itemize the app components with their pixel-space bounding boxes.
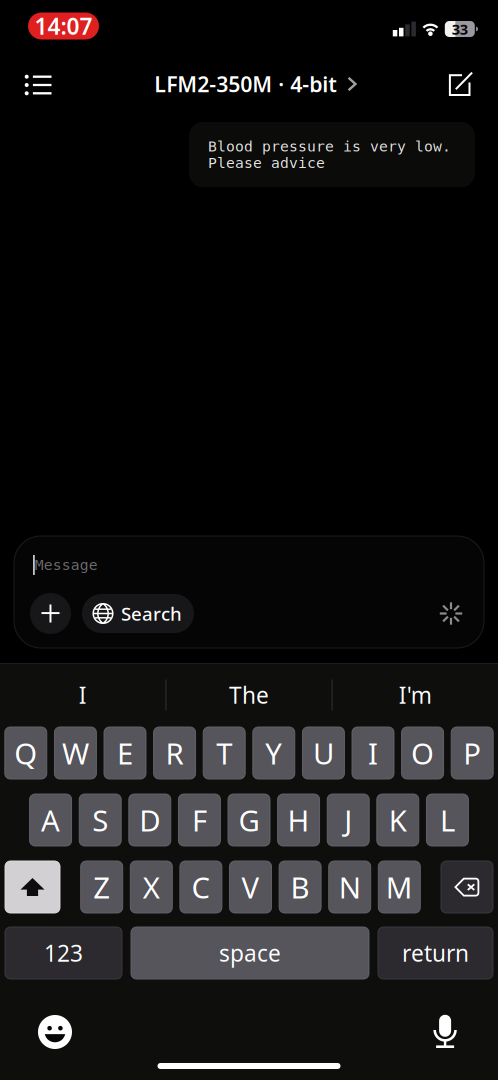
button[interactable]: A bbox=[30, 794, 72, 846]
button[interactable]: E bbox=[104, 727, 146, 779]
button[interactable]: H bbox=[278, 794, 320, 846]
staticText: I'm bbox=[399, 680, 432, 710]
button[interactable]: New chat bbox=[437, 60, 485, 108]
button[interactable]: Z bbox=[81, 861, 123, 913]
button[interactable]: K bbox=[377, 794, 419, 846]
button[interactable]: Y bbox=[253, 727, 295, 779]
staticText: F bbox=[192, 800, 207, 839]
button[interactable]: X bbox=[130, 861, 172, 913]
staticText: S bbox=[92, 800, 108, 839]
staticText: Z bbox=[93, 867, 110, 906]
staticText: H bbox=[288, 800, 310, 839]
staticText: P bbox=[463, 733, 481, 772]
button[interactable]: W bbox=[54, 727, 96, 779]
staticText: I bbox=[79, 680, 87, 710]
staticText: E bbox=[117, 733, 133, 772]
staticText: V bbox=[241, 867, 259, 906]
button[interactable]: S bbox=[79, 794, 121, 846]
button[interactable]: Emoji bbox=[31, 1010, 79, 1054]
staticText: L bbox=[440, 800, 455, 839]
button[interactable]: L bbox=[426, 794, 468, 846]
button[interactable]: V bbox=[229, 861, 271, 913]
button[interactable]: 123 bbox=[5, 927, 122, 979]
staticText: Blood pressure is very low. Please advic… bbox=[208, 138, 451, 171]
staticText: R bbox=[166, 733, 184, 772]
staticText: D bbox=[139, 800, 160, 839]
button[interactable]: N bbox=[329, 861, 371, 913]
staticText: X bbox=[143, 867, 160, 906]
staticText: Y bbox=[265, 733, 282, 772]
button[interactable]: return bbox=[378, 927, 493, 979]
staticText: G bbox=[238, 800, 259, 839]
staticText: N bbox=[339, 867, 361, 906]
button[interactable]: Shift bbox=[5, 861, 60, 913]
button[interactable]: space bbox=[131, 927, 369, 979]
staticText: A bbox=[41, 800, 60, 839]
button[interactable]: LFM2-350M · 4-bit bbox=[142, 60, 357, 108]
button[interactable]: P bbox=[451, 727, 493, 779]
button[interactable]: O bbox=[402, 727, 444, 779]
staticText: Q bbox=[14, 733, 37, 772]
staticText: Message bbox=[35, 557, 98, 573]
button[interactable]: I bbox=[352, 727, 394, 779]
button[interactable]: J bbox=[327, 794, 369, 846]
staticText: T bbox=[216, 733, 232, 772]
button[interactable]: G bbox=[228, 794, 270, 846]
staticText: Search bbox=[121, 601, 182, 626]
button[interactable]: Conversations bbox=[14, 60, 62, 108]
staticText: U bbox=[313, 733, 334, 772]
button[interactable]: The bbox=[166, 669, 331, 721]
button[interactable]: Q bbox=[5, 727, 47, 779]
button[interactable]: M bbox=[378, 861, 420, 913]
staticText: I bbox=[368, 733, 378, 772]
button[interactable]: I bbox=[0, 669, 165, 721]
staticText: B bbox=[291, 867, 310, 906]
staticText: O bbox=[411, 733, 434, 772]
staticText: return bbox=[402, 938, 469, 968]
staticText: J bbox=[344, 800, 352, 839]
staticText: LFM2-350M · 4-bit bbox=[154, 70, 337, 98]
staticText: The bbox=[229, 680, 269, 710]
button[interactable]: I'm bbox=[333, 669, 498, 721]
staticText: W bbox=[62, 733, 89, 772]
staticText: 33 bbox=[452, 19, 468, 39]
staticText: C bbox=[191, 867, 210, 906]
staticText: K bbox=[389, 800, 407, 839]
button[interactable]: Search bbox=[82, 594, 194, 633]
button[interactable]: F bbox=[178, 794, 220, 846]
button[interactable]: R bbox=[154, 727, 196, 779]
button[interactable]: D bbox=[129, 794, 171, 846]
button[interactable]: B bbox=[279, 861, 321, 913]
button[interactable]: U bbox=[302, 727, 344, 779]
button[interactable]: Delete bbox=[441, 861, 493, 913]
staticText: 14:07 bbox=[34, 11, 92, 41]
staticText: 123 bbox=[44, 938, 83, 968]
button[interactable]: Dictation bbox=[421, 1010, 469, 1054]
staticText: space bbox=[219, 938, 281, 968]
button[interactable]: Add attachment bbox=[30, 593, 71, 634]
button[interactable]: T bbox=[203, 727, 245, 779]
staticText: M bbox=[386, 867, 413, 906]
button[interactable]: C bbox=[180, 861, 222, 913]
